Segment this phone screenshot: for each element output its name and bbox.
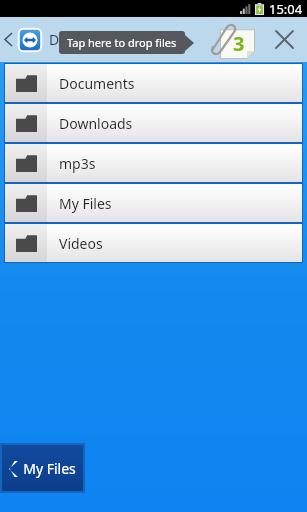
staticText: 15:04 (269, 0, 303, 17)
staticText: Videos (59, 234, 103, 253)
button[interactable]: Back (0, 17, 16, 62)
staticText: Documents (59, 74, 135, 93)
button[interactable]: Documents (5, 64, 302, 102)
staticText: My Files (59, 194, 112, 213)
staticText: My Files (23, 459, 76, 478)
button[interactable]: mp3s (5, 144, 302, 182)
button[interactable]: Files ready to transfer (205, 21, 260, 61)
button[interactable]: Videos (5, 224, 302, 262)
staticText: Downloads (59, 114, 133, 133)
button[interactable]: Close (262, 17, 307, 62)
button[interactable]: My Files (2, 445, 83, 491)
staticText: mp3s (59, 154, 96, 173)
button[interactable]: My Files (5, 184, 302, 222)
staticText: 3 (233, 30, 245, 57)
button[interactable]: Downloads (5, 104, 302, 142)
staticText: Tap here to drop files (67, 35, 177, 50)
staticText: Desktop (49, 30, 104, 49)
